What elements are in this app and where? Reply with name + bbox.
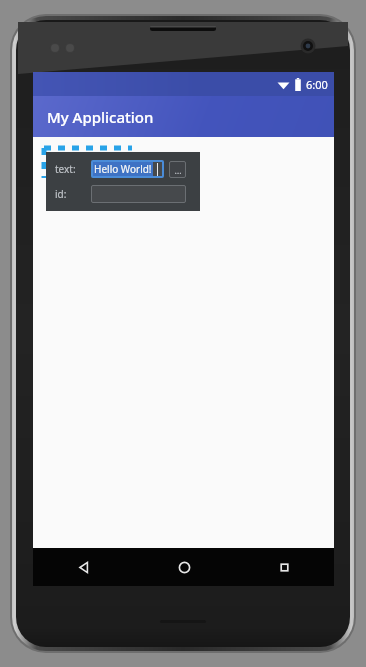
staticText: … [174, 164, 182, 176]
button[interactable]: Home [134, 548, 234, 586]
staticText: id: [55, 187, 87, 201]
button[interactable] [91, 185, 186, 203]
staticText: 6:00 [306, 77, 328, 92]
button[interactable]: Back [33, 548, 134, 586]
button[interactable]: My Application [33, 96, 334, 137]
button[interactable]: Hello World! [91, 160, 164, 178]
staticText: My Application [47, 107, 154, 127]
button[interactable]: Recent apps [234, 548, 334, 586]
staticText: text: [55, 162, 87, 176]
staticText: Hello World! [94, 162, 152, 176]
button[interactable]: More options [169, 161, 186, 178]
